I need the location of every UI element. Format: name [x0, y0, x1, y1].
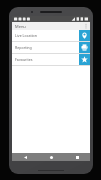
other: Favourites — [79, 54, 90, 65]
button[interactable]: More options — [82, 22, 90, 30]
staticText: Reporting — [15, 45, 32, 50]
other: Reporting — [79, 42, 90, 53]
staticText: Menu — [15, 24, 26, 29]
button[interactable]: Back — [12, 153, 38, 161]
other: Live Location — [79, 30, 90, 41]
staticText: Favourites — [15, 57, 33, 62]
button[interactable]: Recent apps — [64, 153, 90, 161]
staticText: Live Location — [15, 33, 38, 38]
button[interactable]: Favourites — [12, 54, 90, 65]
button[interactable]: Live Location — [12, 30, 90, 41]
button[interactable]: Reporting — [12, 42, 90, 53]
button[interactable]: Home — [38, 153, 64, 161]
